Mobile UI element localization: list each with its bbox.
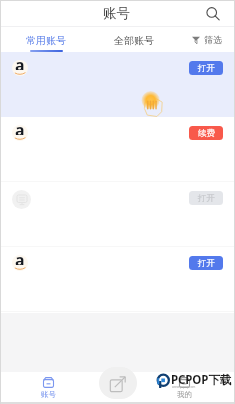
staticText: a [15,54,25,70]
button[interactable]: a [0,247,235,312]
staticText: a [15,119,25,135]
staticText: 筛选 [204,34,222,45]
button[interactable]: 打开 [189,256,223,270]
staticText: 打开 [198,258,215,269]
button[interactable]: 我的 [162,372,207,404]
staticText: 账号 [103,5,130,22]
staticText: 常用账号 [26,34,66,47]
button[interactable]: 打开 [189,61,223,75]
staticText: 打开 [198,63,215,74]
button[interactable]: 账号 [26,372,71,404]
button[interactable]: 打开 [189,191,223,205]
staticText: 全部账号 [114,34,154,47]
button[interactable]: a [0,117,235,182]
button[interactable]: Search [201,2,223,24]
button[interactable]: 全部账号 [92,26,176,52]
button[interactable]: 筛选 [192,34,222,45]
staticText: a [15,249,25,265]
button[interactable]: 续费 [189,126,223,140]
button[interactable]: 常用账号 [4,26,88,52]
staticText: 打开 [198,193,215,204]
button[interactable]: a [0,52,235,117]
staticText: www.pcpop.com [172,385,196,389]
button[interactable]: 打开 [0,182,235,247]
button[interactable]: Share [99,367,137,399]
staticText: 账号 [41,390,56,399]
staticText: 续费 [198,128,215,139]
staticText: 我的 [177,390,192,399]
staticText: PCPOP下载 [171,372,232,388]
